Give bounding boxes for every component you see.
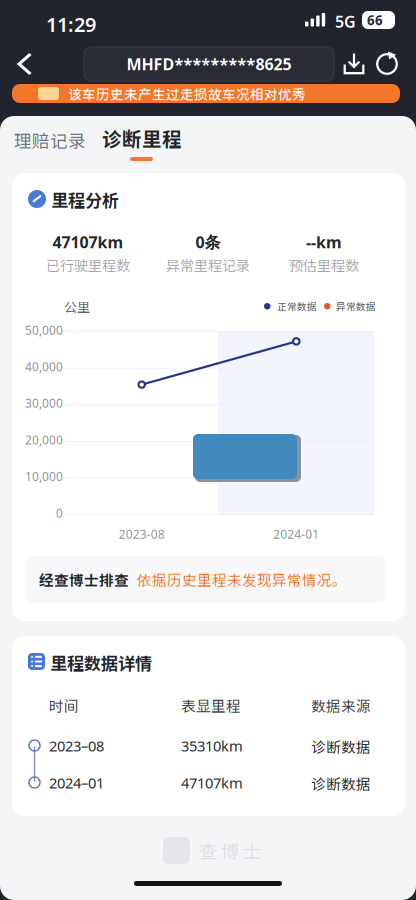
staticText: 诊断里程 [102,124,182,152]
staticText: 依据历史里程未发现异常情况。 [137,569,347,590]
staticText: 数据来源 [311,695,371,716]
staticText: 预估里程数 [289,255,359,275]
staticText: 经查博士排查 [39,569,129,590]
staticText: 47107km [181,773,243,792]
staticText: 2024-01 [273,526,319,542]
staticText: 正常数据 [277,299,317,313]
staticText: 2024–01 [49,773,104,792]
staticText: 异常数据 [336,299,376,313]
button[interactable]: 理赔记录 [7,122,93,158]
staticText: 理赔记录 [14,127,86,153]
staticText: 66 [367,11,383,29]
button[interactable]: Download [336,44,372,84]
staticText: 11:29 [46,11,96,38]
staticText: 公里 [64,297,90,316]
staticText: 里程数据详情 [50,650,152,675]
staticText: 0条 [195,231,220,253]
staticText: 2023–08 [49,736,104,755]
staticText: 20,000 [25,432,63,448]
staticText: 50,000 [25,322,63,338]
button[interactable]: 诊断里程 [96,120,188,164]
staticText: 47107km [52,231,123,253]
staticText: 35310km [181,736,243,755]
staticText: --km [306,231,342,253]
staticText: 诊断数据 [311,736,371,757]
staticText: 已行驶里程数 [46,255,130,275]
staticText: 该车历史未产生过走损故车况相对优秀 [68,84,306,103]
staticText: 异常里程记录 [166,255,250,275]
staticText: 表显里程 [181,695,241,716]
staticText: 40,000 [25,359,63,374]
staticText: 5G [335,11,356,32]
staticText: 0 [56,505,63,521]
staticText: 里程分析 [51,187,119,212]
button[interactable]: Back [3,44,47,84]
staticText: MHFD*********8625 [126,53,291,75]
staticText: 查 博 士 [199,837,261,864]
staticText: 10,000 [25,468,63,484]
staticText: 30,000 [25,395,63,411]
staticText: 2023-08 [119,526,165,542]
staticText: 时间 [49,695,79,716]
button[interactable]: Refresh [369,43,405,83]
staticText: 诊断数据 [311,773,371,794]
